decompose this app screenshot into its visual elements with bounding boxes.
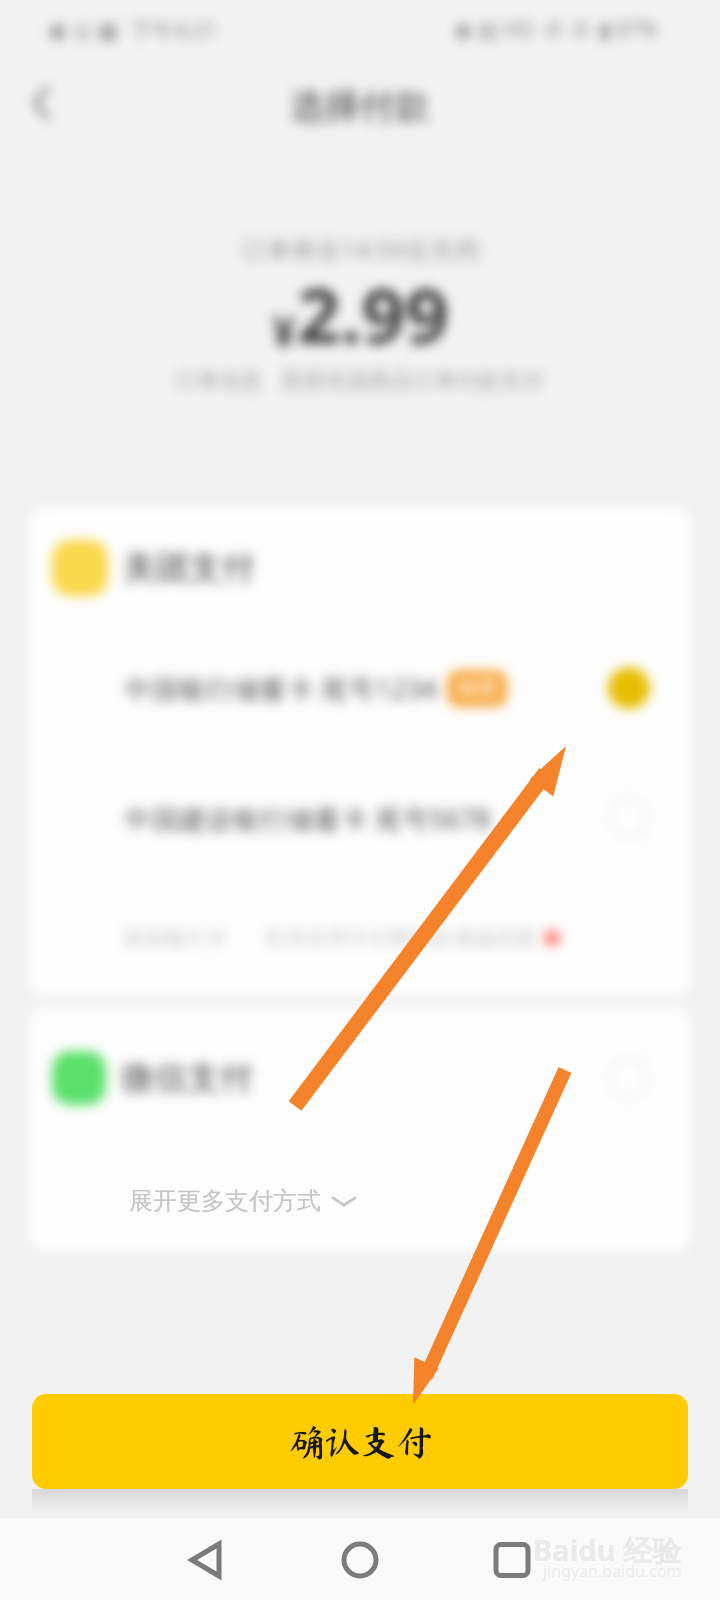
staticText: 推荐 [457,676,497,701]
button[interactable]: 中国银行储蓄卡 尾号1234 [125,628,650,748]
button[interactable]: 添加银行卡 [122,925,227,951]
button[interactable]: Back [9,71,73,135]
button[interactable]: Recents [482,1530,542,1590]
staticText: ◉ ▤ HD ıll ıll ▮ 87% [454,15,658,44]
staticText: 2.99 [297,262,449,366]
staticText: 订单信息 美团优选商品订单付款支付 [175,364,545,394]
button[interactable]: 确认支付 [32,1394,688,1489]
staticText: ¥ [272,302,297,359]
button[interactable]: 微信支付 [52,1008,650,1148]
staticText: 中国银行储蓄卡 尾号1234 [125,670,437,707]
staticText: 展开更多支付方式 [129,1186,321,1216]
staticText: 中国建设银行储蓄卡 尾号5678 [125,800,491,837]
staticText: 支持信用卡分期付款满减优惠 [263,925,536,951]
staticText: 订单将在14:59后关闭 [241,232,480,266]
button[interactable]: Selected [608,667,650,709]
staticText: 美团支付 [123,547,255,589]
button[interactable]: Back [176,1530,236,1590]
staticText: jingyan.baidu.com [543,1560,682,1582]
staticText: 微信支付 [121,1057,253,1099]
staticText: 确认支付 [288,1423,432,1460]
staticText: 选择付款 [290,84,430,128]
button[interactable]: 展开更多支付方式 [129,1186,357,1216]
button[interactable]: 美团支付 [52,508,690,628]
staticText: ◉ ◎ ▣ 下午4:21 [48,14,218,44]
button[interactable]: Home [330,1530,390,1590]
staticText: 添加银行卡 [122,925,227,951]
button[interactable]: 中国建设银行储蓄卡 尾号5678 [125,748,650,888]
button[interactable]: 支持信用卡分期付款满减优惠 [263,925,560,951]
staticText: Baidu 经验 [533,1530,682,1570]
